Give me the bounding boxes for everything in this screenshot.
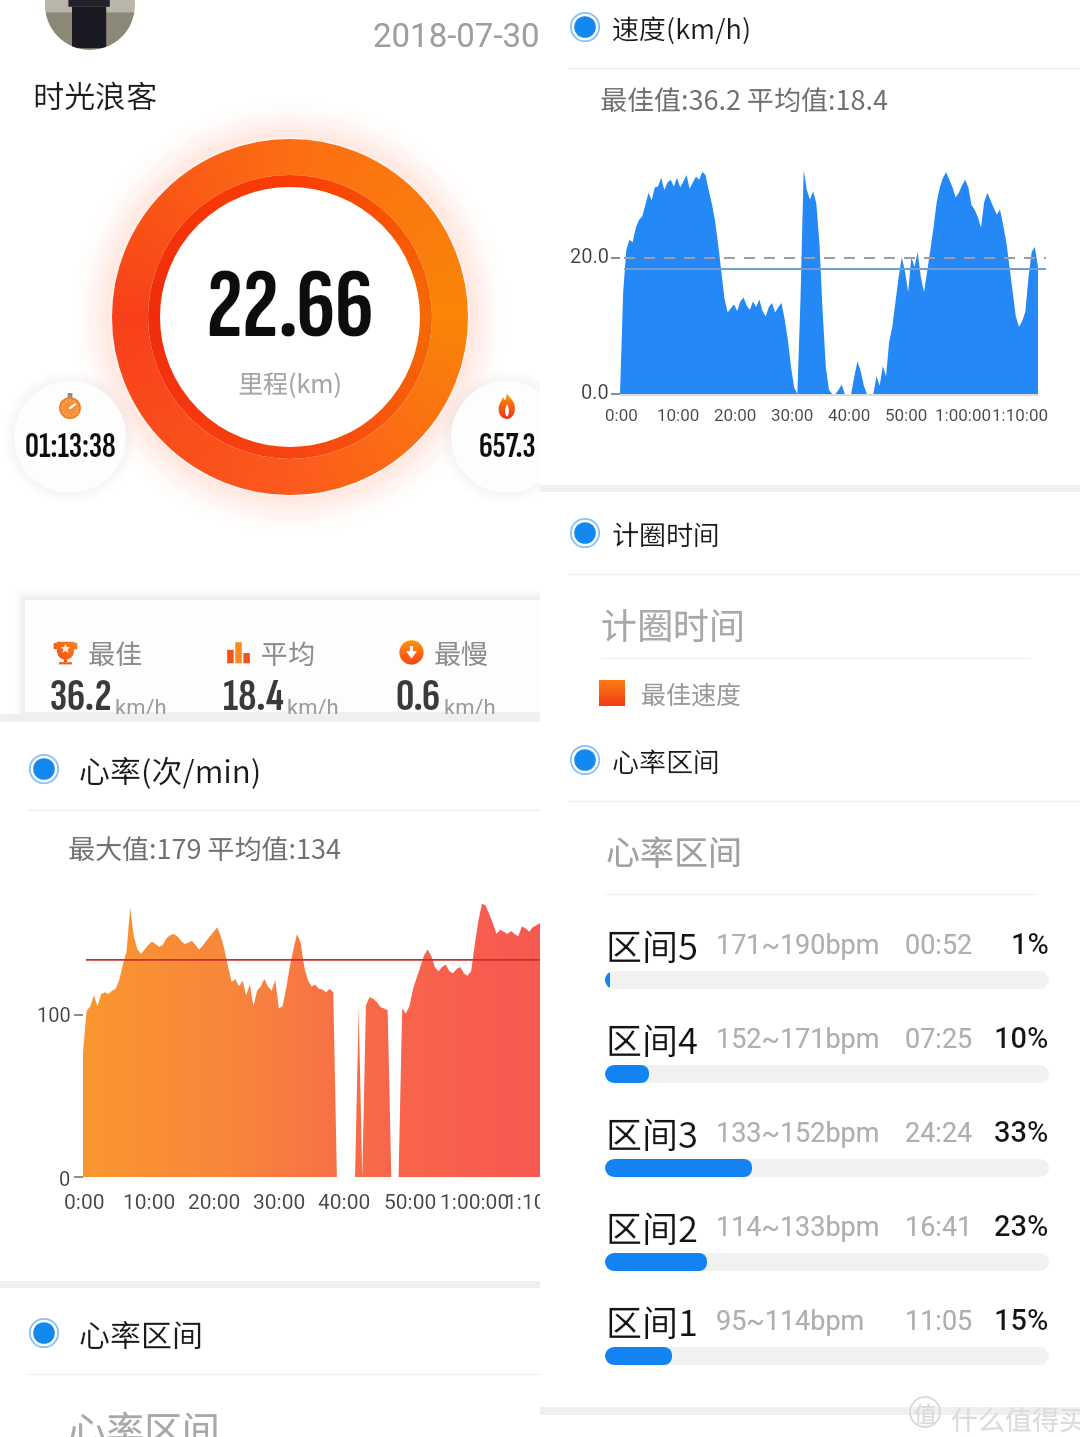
- button[interactable]: 区间3: [540, 1104, 1080, 1198]
- staticText: 00:52: [905, 929, 973, 961]
- staticText: 171~190bpm: [716, 929, 880, 961]
- staticText: 值: [914, 1396, 937, 1428]
- button[interactable]: 速度(km/h): [540, 0, 1080, 69]
- staticText: 50:00: [885, 405, 928, 425]
- staticText: km/h: [444, 695, 496, 721]
- staticText: 10:00: [657, 405, 700, 425]
- staticText: 心率区间: [79, 1311, 203, 1356]
- staticText: 657.3: [479, 425, 536, 467]
- staticText: 0.0: [581, 380, 609, 403]
- button[interactable]: 最佳: [25, 600, 198, 712]
- button[interactable]: 心率区间: [540, 718, 1080, 802]
- staticText: km/h: [115, 695, 167, 721]
- staticText: 30:00: [771, 405, 814, 425]
- staticText: 20:00: [188, 1190, 241, 1215]
- staticText: 36.2: [50, 669, 112, 724]
- staticText: 10:00: [123, 1190, 176, 1215]
- staticText: 133~152bpm: [716, 1117, 880, 1149]
- staticText: 152~171bpm: [716, 1023, 880, 1055]
- staticText: 0: [59, 1167, 71, 1190]
- staticText: 33%: [994, 1115, 1049, 1149]
- staticText: 时光浪客: [33, 72, 157, 117]
- staticText: 0:00: [605, 405, 638, 425]
- staticText: 心率区间: [612, 741, 720, 780]
- staticText: 区间2: [606, 1200, 698, 1252]
- staticText: 心率区间: [68, 1400, 221, 1437]
- staticText: 心率区间: [606, 826, 742, 875]
- staticText: 平均: [261, 633, 315, 672]
- staticText: 20:00: [714, 405, 757, 425]
- staticText: 1:00:00: [440, 1190, 510, 1215]
- staticText: 心率(次/min): [79, 747, 262, 792]
- staticText: 最佳速度: [641, 675, 742, 711]
- staticText: 最佳: [88, 633, 142, 672]
- staticText: 0.6: [396, 669, 441, 724]
- button[interactable]: 平均: [198, 600, 371, 712]
- staticText: 区间4: [606, 1012, 698, 1064]
- staticText: 最佳值:36.2 平均值:18.4: [600, 79, 888, 118]
- button[interactable]: [14, 381, 126, 493]
- button[interactable]: 心率(次/min): [0, 727, 540, 811]
- staticText: 01:13:38: [25, 425, 116, 467]
- button[interactable]: 心率区间: [0, 1291, 540, 1375]
- button[interactable]: 区间4: [540, 1010, 1080, 1104]
- staticText: 最慢: [434, 633, 488, 672]
- button[interactable]: 区间2: [540, 1198, 1080, 1292]
- staticText: 最大值:179 平均值:134: [68, 828, 341, 867]
- button[interactable]: Avatar: [45, 0, 135, 50]
- staticText: 100: [37, 1003, 71, 1026]
- staticText: 区间3: [606, 1106, 698, 1158]
- staticText: 20.0: [570, 244, 609, 267]
- staticText: 95~114bpm: [716, 1305, 865, 1337]
- staticText: km/h: [287, 695, 339, 721]
- staticText: 16:41: [905, 1211, 973, 1243]
- button[interactable]: 最佳速度: [599, 675, 742, 711]
- staticText: 50:00: [384, 1190, 437, 1215]
- staticText: 计圈时间: [601, 597, 746, 649]
- staticText: 23%: [994, 1209, 1049, 1243]
- staticText: 40:00: [828, 405, 871, 425]
- staticText: 1:10:00: [992, 405, 1049, 425]
- staticText: 1%: [1011, 927, 1049, 961]
- staticText: 区间1: [606, 1294, 698, 1346]
- staticText: 15%: [994, 1303, 1049, 1337]
- staticText: 0:00: [64, 1190, 105, 1215]
- staticText: 计圈时间: [612, 514, 720, 553]
- staticText: 18.4: [223, 669, 284, 724]
- staticText: 里程(km): [238, 364, 342, 400]
- staticText: 1:10:00: [505, 1190, 575, 1215]
- staticText: 114~133bpm: [716, 1211, 880, 1243]
- button[interactable]: 计圈时间: [540, 491, 1080, 575]
- staticText: 2018-07-30: [373, 16, 540, 55]
- staticText: 区间5: [606, 918, 698, 970]
- staticText: 速度(km/h): [612, 8, 752, 47]
- staticText: 07:25: [905, 1023, 973, 1055]
- staticText: 10%: [994, 1021, 1049, 1055]
- button[interactable]: 区间1: [540, 1292, 1080, 1386]
- button[interactable]: [451, 381, 563, 493]
- button[interactable]: 最慢: [371, 600, 540, 712]
- staticText: 22.66: [207, 248, 374, 366]
- staticText: 11:05: [905, 1305, 973, 1337]
- staticText: 40:00: [318, 1190, 371, 1215]
- staticText: 1:00:00: [935, 405, 992, 425]
- staticText: 30:00: [253, 1190, 306, 1215]
- button[interactable]: 区间5: [540, 916, 1080, 1010]
- staticText: 24:24: [905, 1117, 973, 1149]
- staticText: 什么值得买: [951, 1399, 1080, 1437]
